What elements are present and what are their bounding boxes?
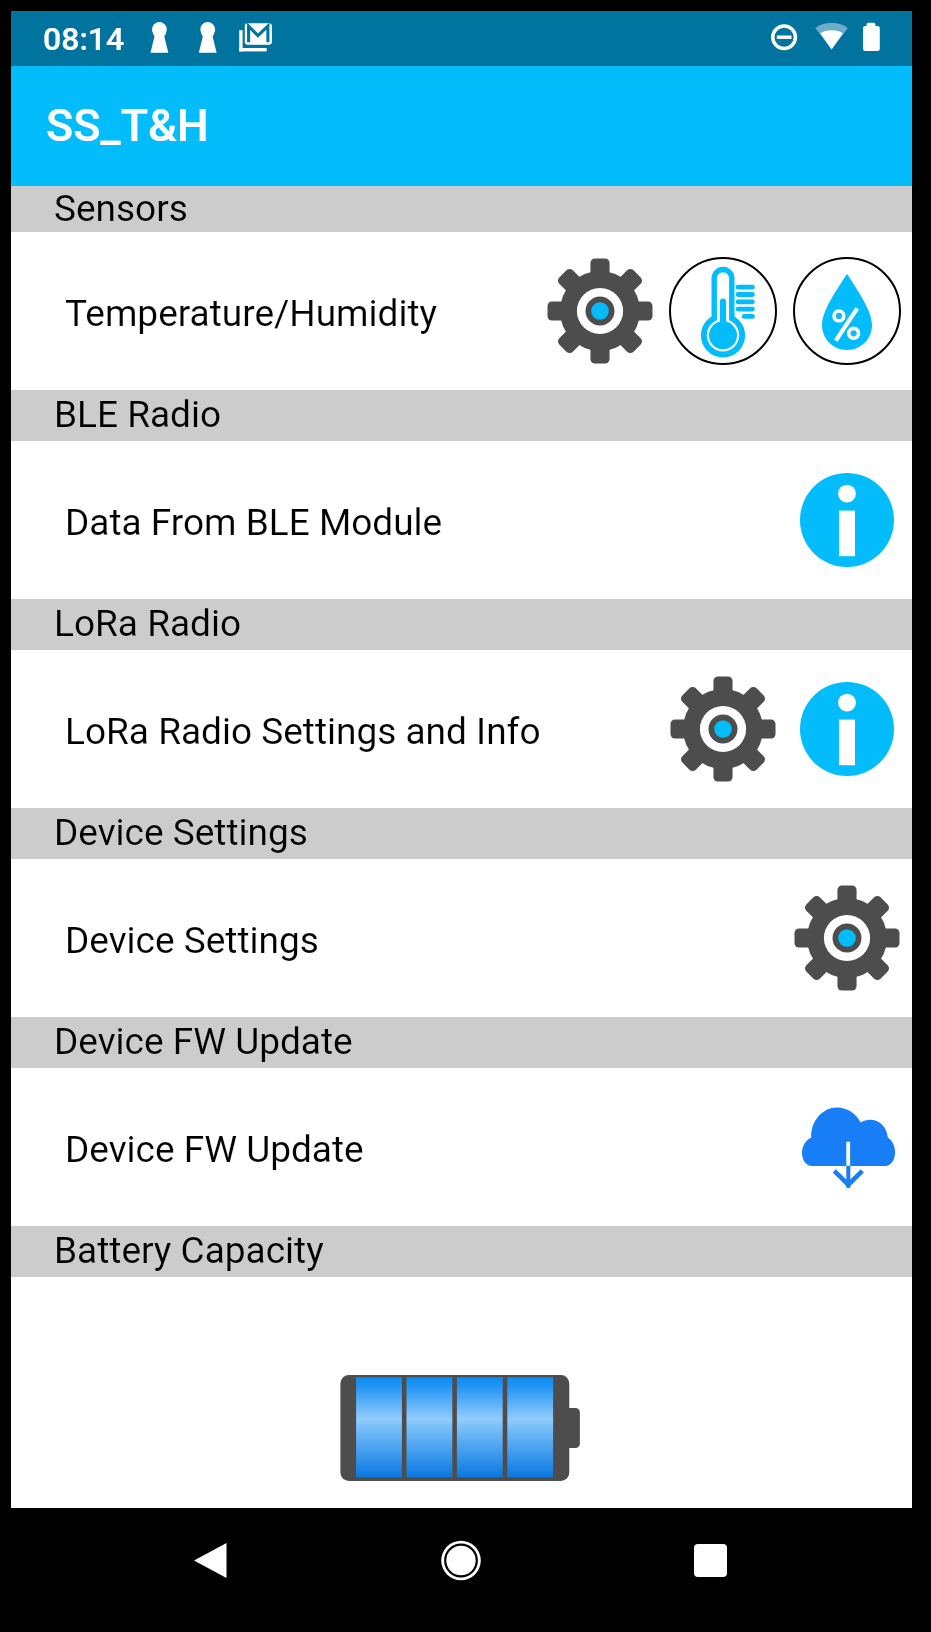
staticText: Temperature/Humidity [65, 292, 437, 335]
staticText: Device Settings [54, 811, 308, 854]
button[interactable]: Home [401, 1500, 521, 1620]
staticText: 08:14 [43, 20, 125, 58]
staticText: Sensors [54, 187, 188, 230]
staticText: SS_T&H [46, 99, 209, 152]
button[interactable]: Data From BLE Module [11, 441, 912, 599]
button[interactable]: Device Settings [11, 859, 912, 1017]
button[interactable]: Back [150, 1500, 270, 1620]
staticText: BLE Radio [54, 393, 222, 436]
staticText: Battery Capacity [54, 1229, 324, 1272]
button[interactable]: LoRa Radio Settings and Info [11, 650, 912, 808]
staticText: LoRa Radio Settings and Info [65, 710, 541, 753]
button[interactable]: Temperature/Humidity [11, 232, 912, 390]
staticText: Device FW Update [54, 1020, 353, 1063]
button[interactable]: Recent apps [650, 1500, 770, 1620]
staticText: Device Settings [65, 919, 319, 962]
staticText: LoRa Radio [54, 602, 242, 645]
staticText: Data From BLE Module [65, 501, 443, 544]
staticText: Device FW Update [65, 1128, 364, 1171]
button[interactable]: Device FW Update [11, 1068, 912, 1226]
